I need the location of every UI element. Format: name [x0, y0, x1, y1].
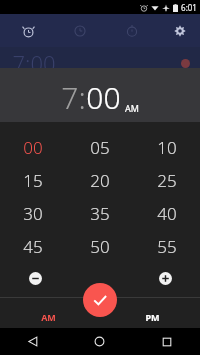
button[interactable]: 05 — [66, 130, 133, 164]
button[interactable]: 20 — [66, 164, 133, 197]
staticText: 30 — [23, 202, 43, 225]
button[interactable]: 50 — [66, 230, 133, 263]
staticText: PM — [145, 311, 160, 323]
button[interactable]: Increase — [133, 263, 198, 293]
button[interactable]: Settings — [168, 19, 192, 43]
button[interactable]: Done — [83, 283, 117, 317]
staticText: 25 — [157, 169, 177, 192]
button[interactable]: 25 — [133, 164, 200, 197]
staticText: 40 — [157, 202, 177, 225]
button[interactable]: Recents — [133, 328, 200, 355]
staticText: AM — [41, 311, 56, 323]
staticText: 35 — [90, 202, 110, 225]
button[interactable]: 30 — [0, 197, 66, 230]
button[interactable]: 40 — [133, 197, 200, 230]
button[interactable]: 10 — [133, 130, 200, 164]
staticText: AM — [125, 102, 139, 114]
button[interactable]: 55 — [133, 230, 200, 263]
button[interactable]: 45 — [0, 230, 66, 263]
button[interactable]: AM — [0, 297, 100, 328]
button[interactable]: Back — [0, 328, 66, 355]
staticText: 20 — [90, 169, 110, 192]
button[interactable]: 00 — [86, 77, 121, 118]
button[interactable]: Alarm — [14, 17, 42, 45]
button[interactable]: 35 — [66, 197, 133, 230]
staticText: 7:00 — [12, 48, 56, 69]
staticText: 10 — [157, 136, 177, 159]
staticText: 05 — [90, 136, 110, 159]
staticText: 50 — [90, 235, 110, 258]
staticText: 6:01 — [181, 2, 197, 13]
staticText: 55 — [157, 235, 177, 258]
staticText: 00 — [86, 77, 121, 118]
button[interactable]: 00 — [0, 130, 66, 164]
staticText: 15 — [23, 169, 43, 192]
staticText: 00 — [23, 136, 43, 159]
button[interactable]: Home — [66, 328, 133, 355]
button[interactable]: Timer — [118, 17, 146, 45]
staticText: 45 — [23, 235, 43, 258]
button[interactable]: PM — [100, 297, 200, 328]
button[interactable]: Clock — [66, 17, 94, 45]
staticText: 7: — [61, 77, 86, 118]
button[interactable]: 7: — [61, 77, 86, 118]
button[interactable]: Decrease — [2, 263, 68, 293]
button[interactable]: 15 — [0, 164, 66, 197]
